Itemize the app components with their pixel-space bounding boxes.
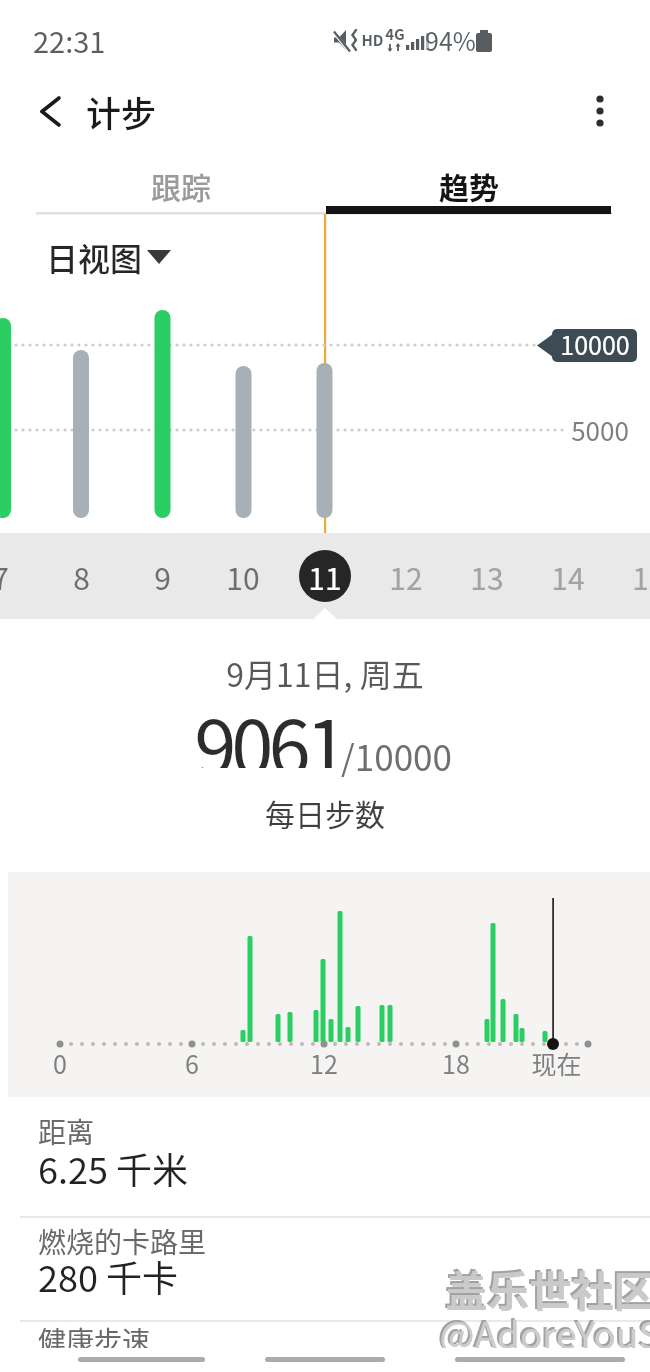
button[interactable]: 14 [528,536,608,616]
button[interactable] [40,230,180,282]
staticText: 趋势 [439,164,499,207]
staticText: 9 [154,555,171,598]
staticText: 距离 [38,1111,95,1152]
staticText: 6.25 千米 [38,1142,189,1194]
button[interactable]: 跟踪 [36,145,326,225]
staticText: 现在 [531,1045,582,1081]
staticText: 11 [308,555,342,598]
staticText: 日视图 [46,234,143,280]
staticText: 5000 [571,411,629,449]
staticText: 4G [385,23,405,45]
staticText: 8 [73,555,90,598]
staticText: 盖乐世社区 [445,1258,650,1319]
staticText: 计步 [86,86,157,137]
button[interactable] [0,1100,650,1216]
button[interactable] [578,88,622,134]
button[interactable]: 11 [285,536,365,616]
button[interactable]: 12 [366,536,446,616]
staticText: 15 [632,555,650,598]
staticText: @AdoreYouS [437,1304,650,1358]
staticText: @AdoreYouS [439,1306,650,1360]
staticText: 14 [551,555,585,598]
button[interactable] [0,1322,650,1372]
button[interactable]: 8 [41,536,121,616]
button[interactable]: 10 [203,536,283,616]
staticText: 6 [185,1045,199,1081]
staticText: 0 [53,1045,67,1081]
staticText: 13 [470,555,504,598]
button[interactable]: 13 [447,536,527,616]
staticText: 9061 [194,688,343,768]
staticText: 12 [310,1045,338,1081]
staticText: HD [361,29,384,51]
staticText: 22:31 [33,19,106,61]
staticText: 12 [389,555,423,598]
staticText: 9月11日, 周五 [226,650,424,696]
staticText: 280 千卡 [38,1250,179,1302]
staticText: 18 [442,1045,470,1081]
staticText: 94% [425,22,476,58]
staticText: 跟踪 [151,164,211,207]
staticText: 7 [0,555,9,598]
staticText: 10 [226,555,260,598]
button[interactable]: 趋势 [326,145,612,225]
staticText: /10000 [341,730,452,781]
staticText: 燃烧的卡路里 [38,1221,207,1262]
button[interactable]: 9 [122,536,202,616]
button[interactable] [30,90,74,134]
staticText: 每日步数 [265,791,385,834]
staticText: 健康步速 [38,1320,151,1361]
button[interactable] [0,1218,650,1320]
staticText: 10000 [560,326,630,362]
staticText: 盖乐世社区 [443,1256,650,1317]
